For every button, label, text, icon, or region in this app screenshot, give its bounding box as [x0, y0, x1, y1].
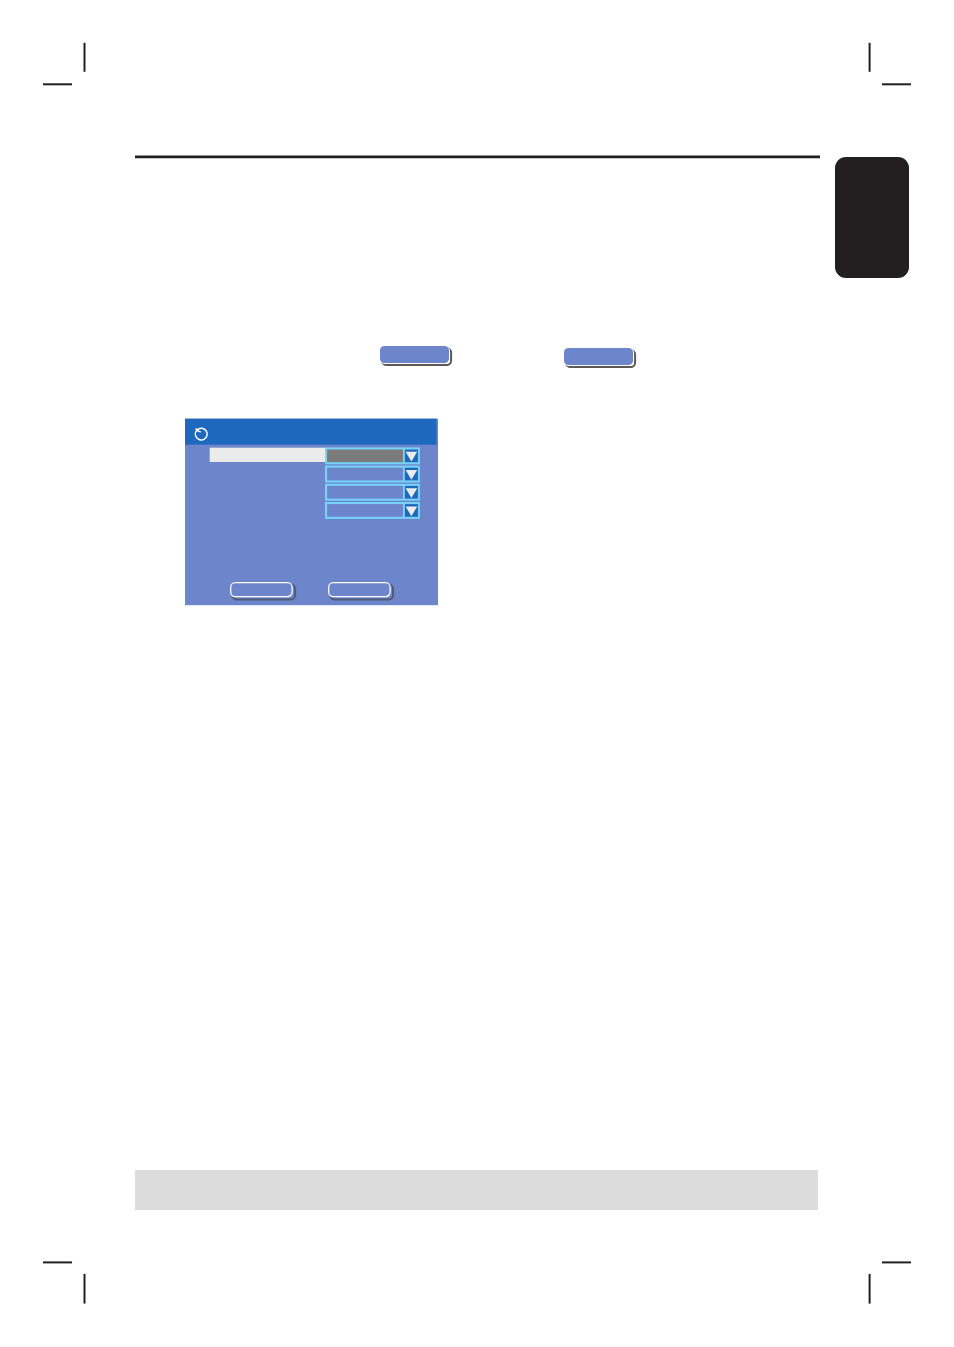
button[interactable]: Setting 1 drop-down: [325, 447, 420, 464]
button[interactable]: Cancel: [328, 582, 391, 597]
button[interactable]: Setting 3 drop-down: [325, 484, 420, 501]
button[interactable]: Soft key A: [380, 346, 449, 363]
button[interactable]: Soft key B: [564, 348, 633, 365]
button[interactable]: OK: [230, 582, 293, 597]
button[interactable]: Setting 4 drop-down: [325, 502, 420, 519]
button[interactable]: Setting 2 drop-down: [325, 466, 420, 483]
button[interactable]: Reset: [194, 427, 209, 442]
button[interactable]: Chapter tab: [835, 157, 909, 278]
